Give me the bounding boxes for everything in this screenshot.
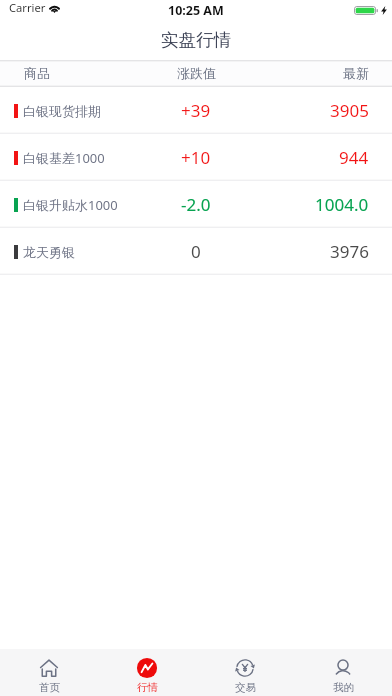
staticText: 最新 — [343, 65, 369, 81]
staticText: +10 — [181, 146, 211, 169]
button[interactable]: 我的 — [294, 649, 392, 696]
staticText: Carrier — [9, 0, 46, 15]
staticText: 行情 — [137, 681, 158, 694]
staticText: 我的 — [333, 681, 354, 694]
staticText: 1004.0 — [315, 193, 369, 216]
staticText: 涨跌值 — [177, 65, 216, 81]
staticText: -2.0 — [181, 193, 211, 216]
staticText: 白银现货排期 — [23, 103, 101, 119]
button[interactable]: 行情 — [98, 649, 196, 696]
button[interactable]: 首页 — [0, 649, 98, 696]
button[interactable]: 龙天勇银 — [0, 228, 392, 275]
staticText: 实盘行情 — [161, 29, 232, 51]
staticText: 首页 — [39, 681, 60, 694]
staticText: 10:25 AM — [168, 2, 224, 19]
staticText: 3905 — [330, 99, 369, 122]
staticText: 白银升贴水1000 — [23, 196, 118, 214]
button[interactable]: 白银现货排期 — [0, 87, 392, 134]
staticText: 0 — [191, 240, 201, 263]
staticText: 944 — [339, 146, 369, 169]
button[interactable]: 白银升贴水1000 — [0, 181, 392, 228]
staticText: +39 — [181, 99, 211, 122]
button[interactable]: 交易 — [196, 649, 294, 696]
staticText: 龙天勇银 — [23, 244, 75, 260]
staticText: 交易 — [235, 681, 256, 694]
staticText: 白银基差1000 — [23, 149, 105, 167]
staticText: 商品 — [24, 65, 50, 81]
staticText: 3976 — [330, 240, 369, 263]
button[interactable]: 白银基差1000 — [0, 134, 392, 181]
